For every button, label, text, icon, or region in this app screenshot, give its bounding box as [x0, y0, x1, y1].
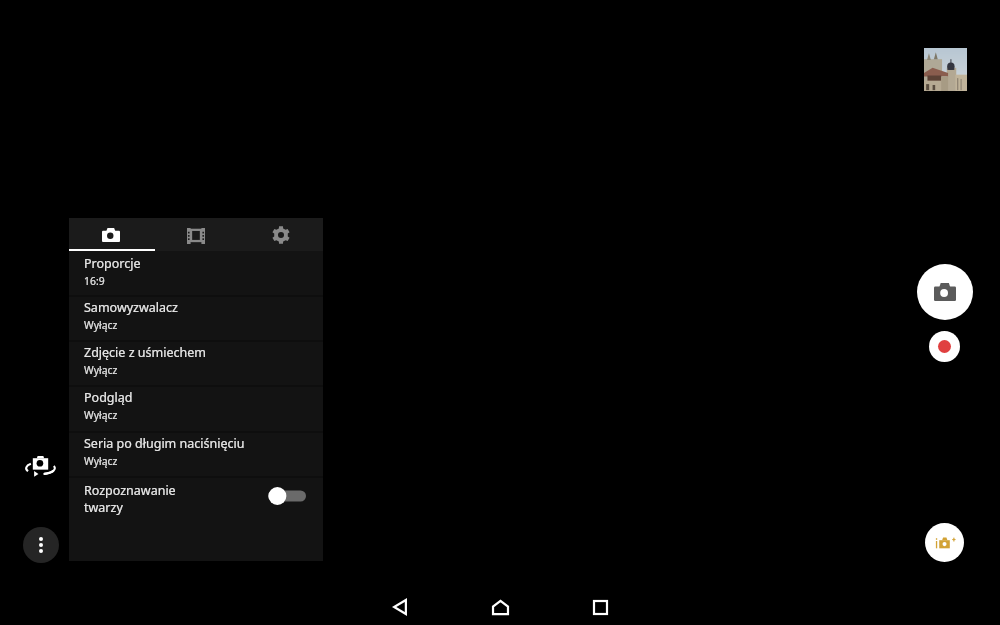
button[interactable]: Last photo	[924, 48, 967, 91]
staticText: Zdjęcie z uśmiechem	[84, 344, 206, 361]
staticText: Seria po długim naciśnięciu	[84, 435, 245, 452]
staticText: Wyłącz	[84, 318, 118, 332]
button[interactable]: Take photo	[917, 264, 973, 320]
button[interactable]: Home	[476, 583, 524, 625]
staticText: Rozpoznawanie twarzy	[84, 482, 176, 515]
button[interactable]: More options	[23, 527, 59, 563]
button[interactable]: General settings	[238, 218, 323, 251]
button[interactable]: Podgląd	[69, 385, 323, 430]
button[interactable]: Recent apps	[576, 583, 624, 625]
button[interactable]: Samowyzwalacz	[69, 295, 323, 340]
staticText: Samowyzwalacz	[84, 299, 178, 316]
button[interactable]: Back	[376, 583, 424, 625]
button[interactable]: Switch camera	[22, 448, 59, 484]
button[interactable]: Photo settings	[69, 218, 153, 251]
button[interactable]: Capture mode	[925, 523, 964, 562]
staticText: 16:9	[84, 274, 105, 288]
staticText: Wyłącz	[84, 408, 118, 422]
button[interactable]: Video settings	[153, 218, 238, 251]
staticText: Wyłącz	[84, 363, 118, 377]
staticText: Podgląd	[84, 389, 133, 406]
button[interactable]: Proporcje	[69, 251, 323, 294]
button[interactable]: Record video	[929, 331, 960, 362]
button[interactable]: Zdjęcie z uśmiechem	[69, 340, 323, 385]
staticText: Wyłącz	[84, 454, 118, 468]
staticText: Proporcje	[84, 255, 141, 272]
button[interactable]: Rozpoznawanie twarzy	[69, 476, 323, 526]
button[interactable]: Seria po długim naciśnięciu	[69, 431, 323, 476]
